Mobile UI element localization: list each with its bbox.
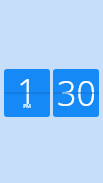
staticText: 1 [17, 69, 37, 114]
button[interactable]: Minute 30 [53, 69, 99, 117]
button[interactable]: Hour 1 PM [4, 69, 50, 117]
staticText: PM [23, 103, 31, 110]
staticText: 30 [57, 70, 96, 116]
